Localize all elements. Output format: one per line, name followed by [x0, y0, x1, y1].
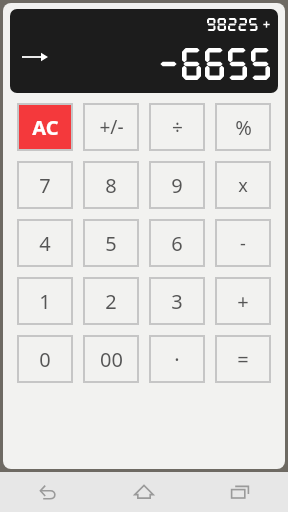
staticText: AC: [32, 114, 59, 141]
button[interactable]: 6: [149, 219, 205, 267]
staticText: 0: [39, 346, 51, 373]
staticText: 00: [100, 346, 123, 373]
button[interactable]: Back: [0, 472, 96, 512]
staticText: 7: [39, 172, 51, 199]
staticText: 2: [105, 288, 117, 315]
button[interactable]: +/-: [83, 103, 139, 151]
staticText: +/-: [99, 114, 124, 140]
button[interactable]: 2: [83, 277, 139, 325]
button[interactable]: 5: [83, 219, 139, 267]
staticText: +: [237, 288, 249, 315]
button[interactable]: 8: [83, 161, 139, 209]
staticText: ÷: [172, 114, 183, 140]
button[interactable]: 4: [17, 219, 73, 267]
staticText: 3: [171, 288, 183, 315]
button[interactable]: -: [215, 219, 271, 267]
button[interactable]: 9: [149, 161, 205, 209]
button[interactable]: Recent apps: [192, 472, 288, 512]
staticText: 1: [39, 288, 51, 315]
other: Result direction: [22, 51, 48, 63]
button[interactable]: +: [215, 277, 271, 325]
staticText: 5: [105, 230, 117, 257]
button[interactable]: 7: [17, 161, 73, 209]
button[interactable]: 3: [149, 277, 205, 325]
button[interactable]: %: [215, 103, 271, 151]
staticText: 4: [39, 230, 51, 257]
staticText: 6: [171, 230, 183, 257]
staticText: 8: [105, 172, 117, 199]
button[interactable]: x: [215, 161, 271, 209]
staticText: =: [237, 346, 249, 373]
button[interactable]: ÷: [149, 103, 205, 151]
button[interactable]: AC: [17, 103, 73, 151]
staticText: 9: [171, 172, 183, 199]
button[interactable]: 0: [17, 335, 73, 383]
button[interactable]: ·: [149, 335, 205, 383]
staticText: x: [238, 173, 248, 198]
button[interactable]: =: [215, 335, 271, 383]
button[interactable]: Home: [96, 472, 192, 512]
button[interactable]: 00: [83, 335, 139, 383]
staticText: -: [240, 231, 246, 256]
button[interactable]: 1: [17, 277, 73, 325]
staticText: %: [235, 114, 252, 141]
staticText: ·: [174, 346, 180, 373]
